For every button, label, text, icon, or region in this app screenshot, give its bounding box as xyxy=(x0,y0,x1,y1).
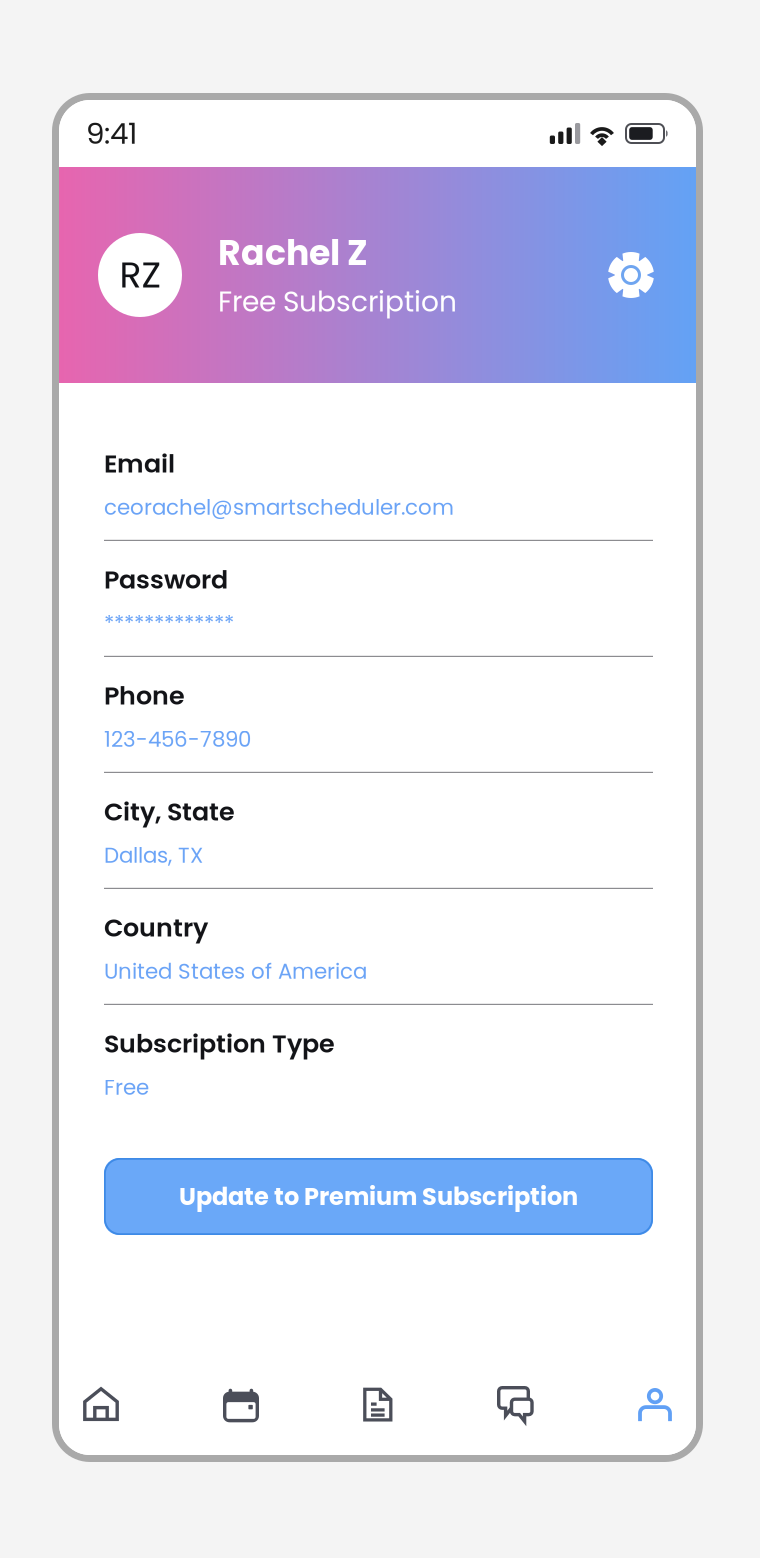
staticText: Email xyxy=(104,446,175,481)
button[interactable]: Documents xyxy=(363,1387,393,1422)
staticText: ************* xyxy=(104,608,234,638)
staticText: RZ xyxy=(119,250,160,300)
staticText: Country xyxy=(104,910,208,945)
button[interactable]: Settings xyxy=(608,252,654,298)
staticText: Free Subscription xyxy=(218,282,457,321)
button[interactable]: Messages xyxy=(497,1386,534,1422)
staticText: Free xyxy=(104,1072,149,1102)
staticText: Rachel Z xyxy=(218,229,368,277)
button[interactable]: Calendar xyxy=(223,1387,259,1422)
staticText: Dallas, TX xyxy=(104,840,203,870)
staticText: United States of America xyxy=(104,956,367,986)
button[interactable]: Update to Premium Subscription xyxy=(104,1158,653,1235)
staticText: City, State xyxy=(104,794,235,829)
staticText: 123-456-7890 xyxy=(104,724,251,754)
staticText: Password xyxy=(104,562,228,597)
staticText: Subscription Type xyxy=(104,1026,335,1061)
staticText: Update to Premium Subscription xyxy=(179,1180,578,1213)
staticText: ceorachel@smartscheduler.com xyxy=(104,492,454,522)
button[interactable]: Home xyxy=(83,1387,119,1422)
staticText: Phone xyxy=(104,678,185,713)
staticText: 9:41 xyxy=(86,113,137,154)
button[interactable]: Profile xyxy=(638,1386,672,1422)
